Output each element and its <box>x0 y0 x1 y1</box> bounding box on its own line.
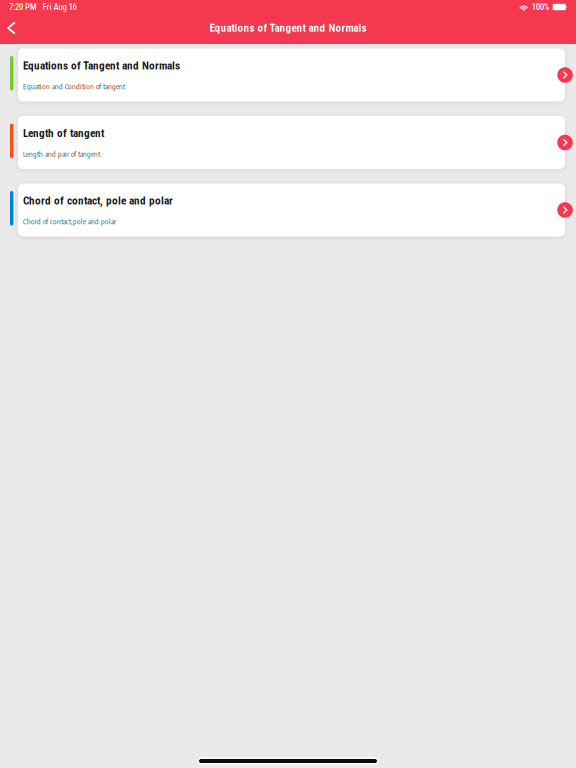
staticText: 7:20 PM <box>9 2 37 12</box>
staticText: Equations of Tangent and Normals <box>23 59 180 72</box>
staticText: Length and pair of tangent <box>23 149 100 158</box>
staticText: Length of tangent <box>23 126 104 140</box>
button[interactable]: Back <box>0 15 23 43</box>
button[interactable]: Chord of contact, pole and polar <box>0 183 576 236</box>
staticText: Equations of Tangent and Normals <box>209 21 366 34</box>
button[interactable]: Length of tangent <box>0 116 576 169</box>
staticText: Chord of contact, pole and polar <box>23 194 173 207</box>
staticText: 100% <box>532 2 550 12</box>
staticText: Equation and Condition of tangent <box>23 82 125 91</box>
staticText: Chord of contact,pole and polar <box>23 217 116 226</box>
staticText: Fri Aug 16 <box>42 2 76 12</box>
button[interactable]: Equations of Tangent and Normals <box>0 48 576 101</box>
